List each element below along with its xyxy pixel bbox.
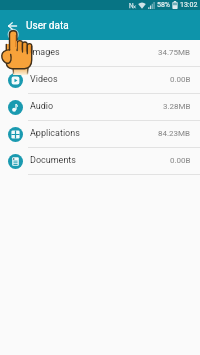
staticText: 13:02 [180, 1, 198, 9]
staticText: Images [30, 47, 60, 58]
button[interactable]: Documents [0, 148, 200, 175]
staticText: 0.00B [170, 156, 191, 165]
staticText: Documents [30, 155, 76, 166]
staticText: 34.75MB [158, 48, 191, 57]
staticText: Videos [30, 74, 58, 85]
button[interactable]: Audio [0, 94, 200, 121]
staticText: Applications [30, 128, 80, 139]
staticText: 84.23MB [158, 129, 191, 138]
button[interactable]: Videos [0, 67, 200, 94]
button[interactable]: Applications [0, 121, 200, 148]
staticText: Audio [30, 101, 54, 112]
button[interactable]: Images [0, 40, 200, 67]
staticText: 3.28MB [163, 102, 191, 111]
staticText: 58% [157, 1, 170, 9]
staticText: User data [26, 20, 69, 32]
button[interactable] [0, 10, 22, 40]
staticText: 0.00B [170, 75, 191, 84]
